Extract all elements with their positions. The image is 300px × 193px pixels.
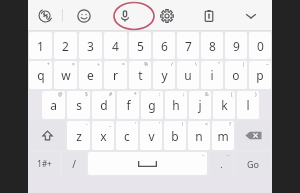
button[interactable]: 5 <box>129 32 151 59</box>
staticText: e <box>87 67 94 83</box>
staticText: o <box>232 67 240 83</box>
button[interactable]: Emoji <box>63 0 104 31</box>
staticText: ÷ <box>97 61 100 68</box>
button[interactable]: g <box>141 91 163 119</box>
button[interactable]: e <box>79 61 102 89</box>
staticText: k <box>221 97 228 113</box>
staticText: ’ <box>159 121 160 128</box>
staticText: q <box>37 67 45 83</box>
button[interactable]: c <box>116 121 138 150</box>
staticText: Go <box>247 158 259 170</box>
staticText: f <box>126 97 131 113</box>
staticText: b <box>171 128 179 144</box>
staticText: \ <box>195 61 197 68</box>
button[interactable]: j <box>189 91 211 119</box>
staticText: d <box>100 97 108 113</box>
staticText: ! <box>182 121 184 128</box>
button[interactable]: Go <box>235 152 271 175</box>
button[interactable]: b <box>164 121 186 150</box>
staticText: w <box>61 67 71 83</box>
staticText: ·· <box>202 152 205 159</box>
staticText: y <box>161 67 168 83</box>
staticText: _ <box>109 121 112 128</box>
button[interactable]: 2 <box>54 32 77 59</box>
staticText: l <box>246 97 250 113</box>
staticText: ( <box>231 91 233 98</box>
button[interactable]: Shift <box>29 121 65 150</box>
button[interactable]: f <box>117 91 139 119</box>
button[interactable]: Backspace <box>236 121 271 150</box>
staticText: h <box>172 97 180 113</box>
staticText: % <box>144 61 149 68</box>
button[interactable]: 6 <box>153 32 175 59</box>
staticText: j <box>198 97 202 113</box>
button[interactable]: 7 <box>177 32 199 59</box>
staticText: @ <box>58 91 63 98</box>
staticText: & <box>205 91 209 98</box>
staticText: ··· <box>226 152 231 159</box>
staticText: = <box>122 61 125 68</box>
button[interactable]: u <box>177 61 199 89</box>
button[interactable]: v <box>140 121 162 150</box>
staticText: 6 <box>161 38 168 54</box>
button[interactable]: s <box>67 91 90 119</box>
button[interactable]: 1 <box>29 32 52 59</box>
staticText: 9 <box>233 38 240 54</box>
staticText: × <box>72 61 75 68</box>
button[interactable]: Hide keyboard <box>230 0 272 31</box>
button[interactable]: t <box>129 61 151 89</box>
button[interactable]: r <box>104 61 127 89</box>
button[interactable]: Translate <box>28 0 62 31</box>
staticText: t <box>138 67 143 83</box>
button[interactable]: y <box>153 61 175 89</box>
staticText: p <box>256 67 264 83</box>
button[interactable]: l <box>237 91 259 119</box>
button[interactable]: i <box>201 61 223 89</box>
staticText: r <box>113 67 118 83</box>
button[interactable]: p <box>249 61 271 89</box>
staticText: v <box>148 128 155 144</box>
button[interactable]: 9 <box>225 32 247 59</box>
button[interactable]: / <box>62 152 86 175</box>
staticText: # <box>109 91 113 98</box>
button[interactable]: z <box>67 121 90 150</box>
button[interactable]: h <box>165 91 187 119</box>
staticText: | <box>242 61 245 68</box>
button[interactable]: Voice input <box>104 0 146 31</box>
button[interactable]: d <box>92 91 115 119</box>
button[interactable]: k <box>213 91 235 119</box>
button[interactable]: Clipboard <box>188 0 230 31</box>
staticText: 0 <box>257 38 264 54</box>
staticText: / <box>72 157 76 171</box>
staticText: 7 <box>185 38 192 54</box>
staticText: i <box>210 67 214 83</box>
staticText: a <box>50 97 57 113</box>
button[interactable]: o <box>225 61 247 89</box>
staticText: ‘ <box>135 121 136 128</box>
button[interactable]: x <box>92 121 114 150</box>
staticText: ) <box>255 91 257 98</box>
button[interactable]: q <box>29 61 52 89</box>
button[interactable]: w <box>54 61 77 89</box>
button[interactable]: . <box>209 152 233 175</box>
button[interactable]: a <box>42 91 65 119</box>
staticText: z <box>76 128 82 144</box>
staticText: " <box>218 61 221 68</box>
staticText: m <box>217 128 229 144</box>
button[interactable]: 8 <box>201 32 223 59</box>
button[interactable]: Space <box>88 152 207 175</box>
button[interactable]: Settings <box>146 0 188 31</box>
button[interactable]: 4 <box>104 32 127 59</box>
staticText: $ <box>85 91 88 98</box>
button[interactable]: 1#+ <box>29 152 60 175</box>
staticText: / <box>171 61 173 68</box>
staticText: + <box>47 61 50 68</box>
staticText: - <box>86 121 88 128</box>
button[interactable]: m <box>212 121 234 150</box>
staticText: ? <box>229 121 232 128</box>
button[interactable]: n <box>188 121 210 150</box>
button[interactable]: 0 <box>249 32 271 59</box>
staticText: * <box>134 91 137 98</box>
button[interactable]: 3 <box>79 32 102 59</box>
staticText: 8 <box>209 38 216 54</box>
